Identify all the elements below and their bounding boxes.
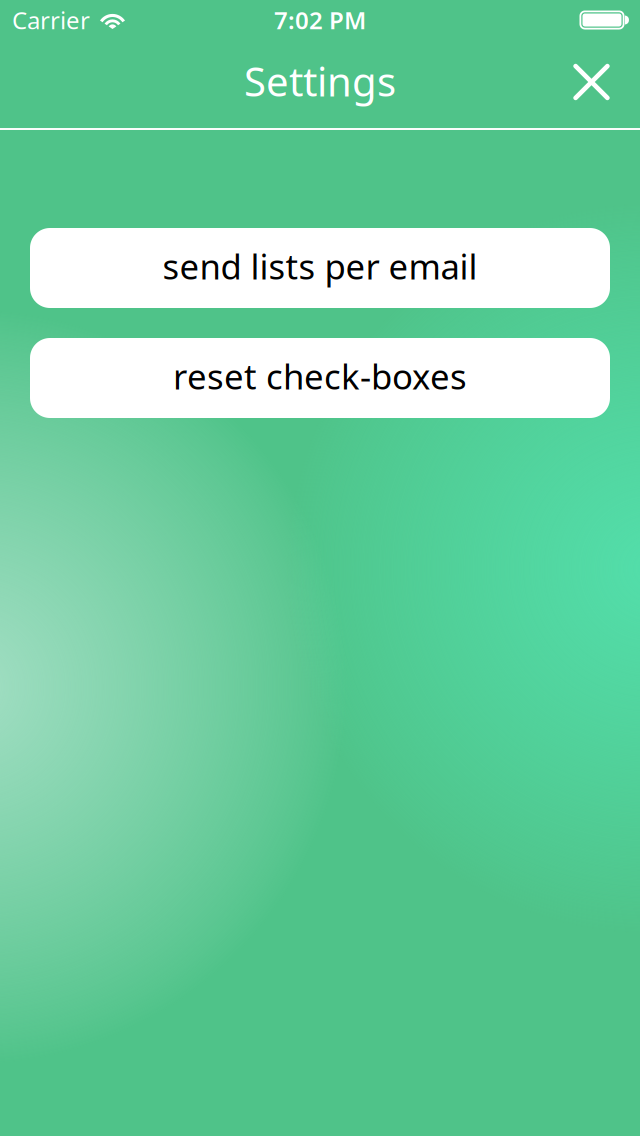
button[interactable]: send lists per email [30, 228, 610, 308]
staticText: reset check-boxes [173, 353, 467, 399]
staticText: send lists per email [162, 243, 477, 289]
button[interactable]: Close [560, 45, 623, 122]
staticText: Carrier [12, 4, 90, 36]
staticText: 7:02 PM [274, 4, 366, 36]
staticText: Settings [244, 54, 396, 107]
button[interactable]: reset check-boxes [30, 338, 610, 418]
